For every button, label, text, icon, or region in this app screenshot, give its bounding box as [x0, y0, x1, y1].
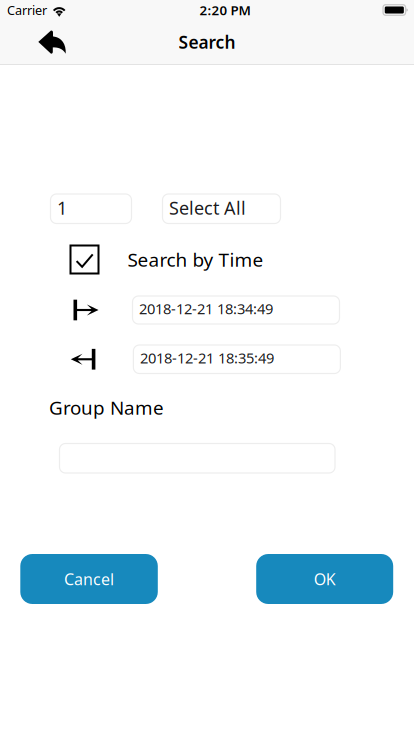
staticText: Cancel [64, 568, 114, 590]
staticText: Select All [169, 195, 246, 220]
button[interactable]: Select All [162, 194, 280, 223]
staticText: 2:20 PM [199, 1, 250, 19]
staticText: Group Name [49, 395, 164, 420]
staticText: 2018-12-21 18:35:49 [140, 348, 274, 368]
button[interactable]: 2018-12-21 18:35:49 [133, 345, 340, 373]
staticText: OK [314, 568, 336, 590]
button[interactable]: Back [30, 20, 74, 64]
button[interactable]: 2018-12-21 18:34:49 [132, 296, 339, 324]
staticText: Carrier [7, 1, 47, 19]
staticText: Search by Time [127, 247, 263, 272]
button[interactable]: Cancel [20, 554, 158, 604]
button[interactable]: OK [256, 554, 393, 604]
staticText: 1 [57, 195, 67, 220]
staticText: 2018-12-21 18:34:49 [139, 298, 273, 318]
button[interactable]: Search by Time [69, 244, 263, 274]
staticText: Search [178, 30, 235, 54]
